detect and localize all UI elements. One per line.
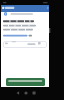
button[interactable] xyxy=(23,90,29,96)
button[interactable] xyxy=(31,90,37,96)
button[interactable] xyxy=(3,34,32,38)
button[interactable] xyxy=(6,78,45,86)
button[interactable] xyxy=(3,12,34,16)
button[interactable] xyxy=(3,41,47,48)
button[interactable] xyxy=(15,90,21,96)
